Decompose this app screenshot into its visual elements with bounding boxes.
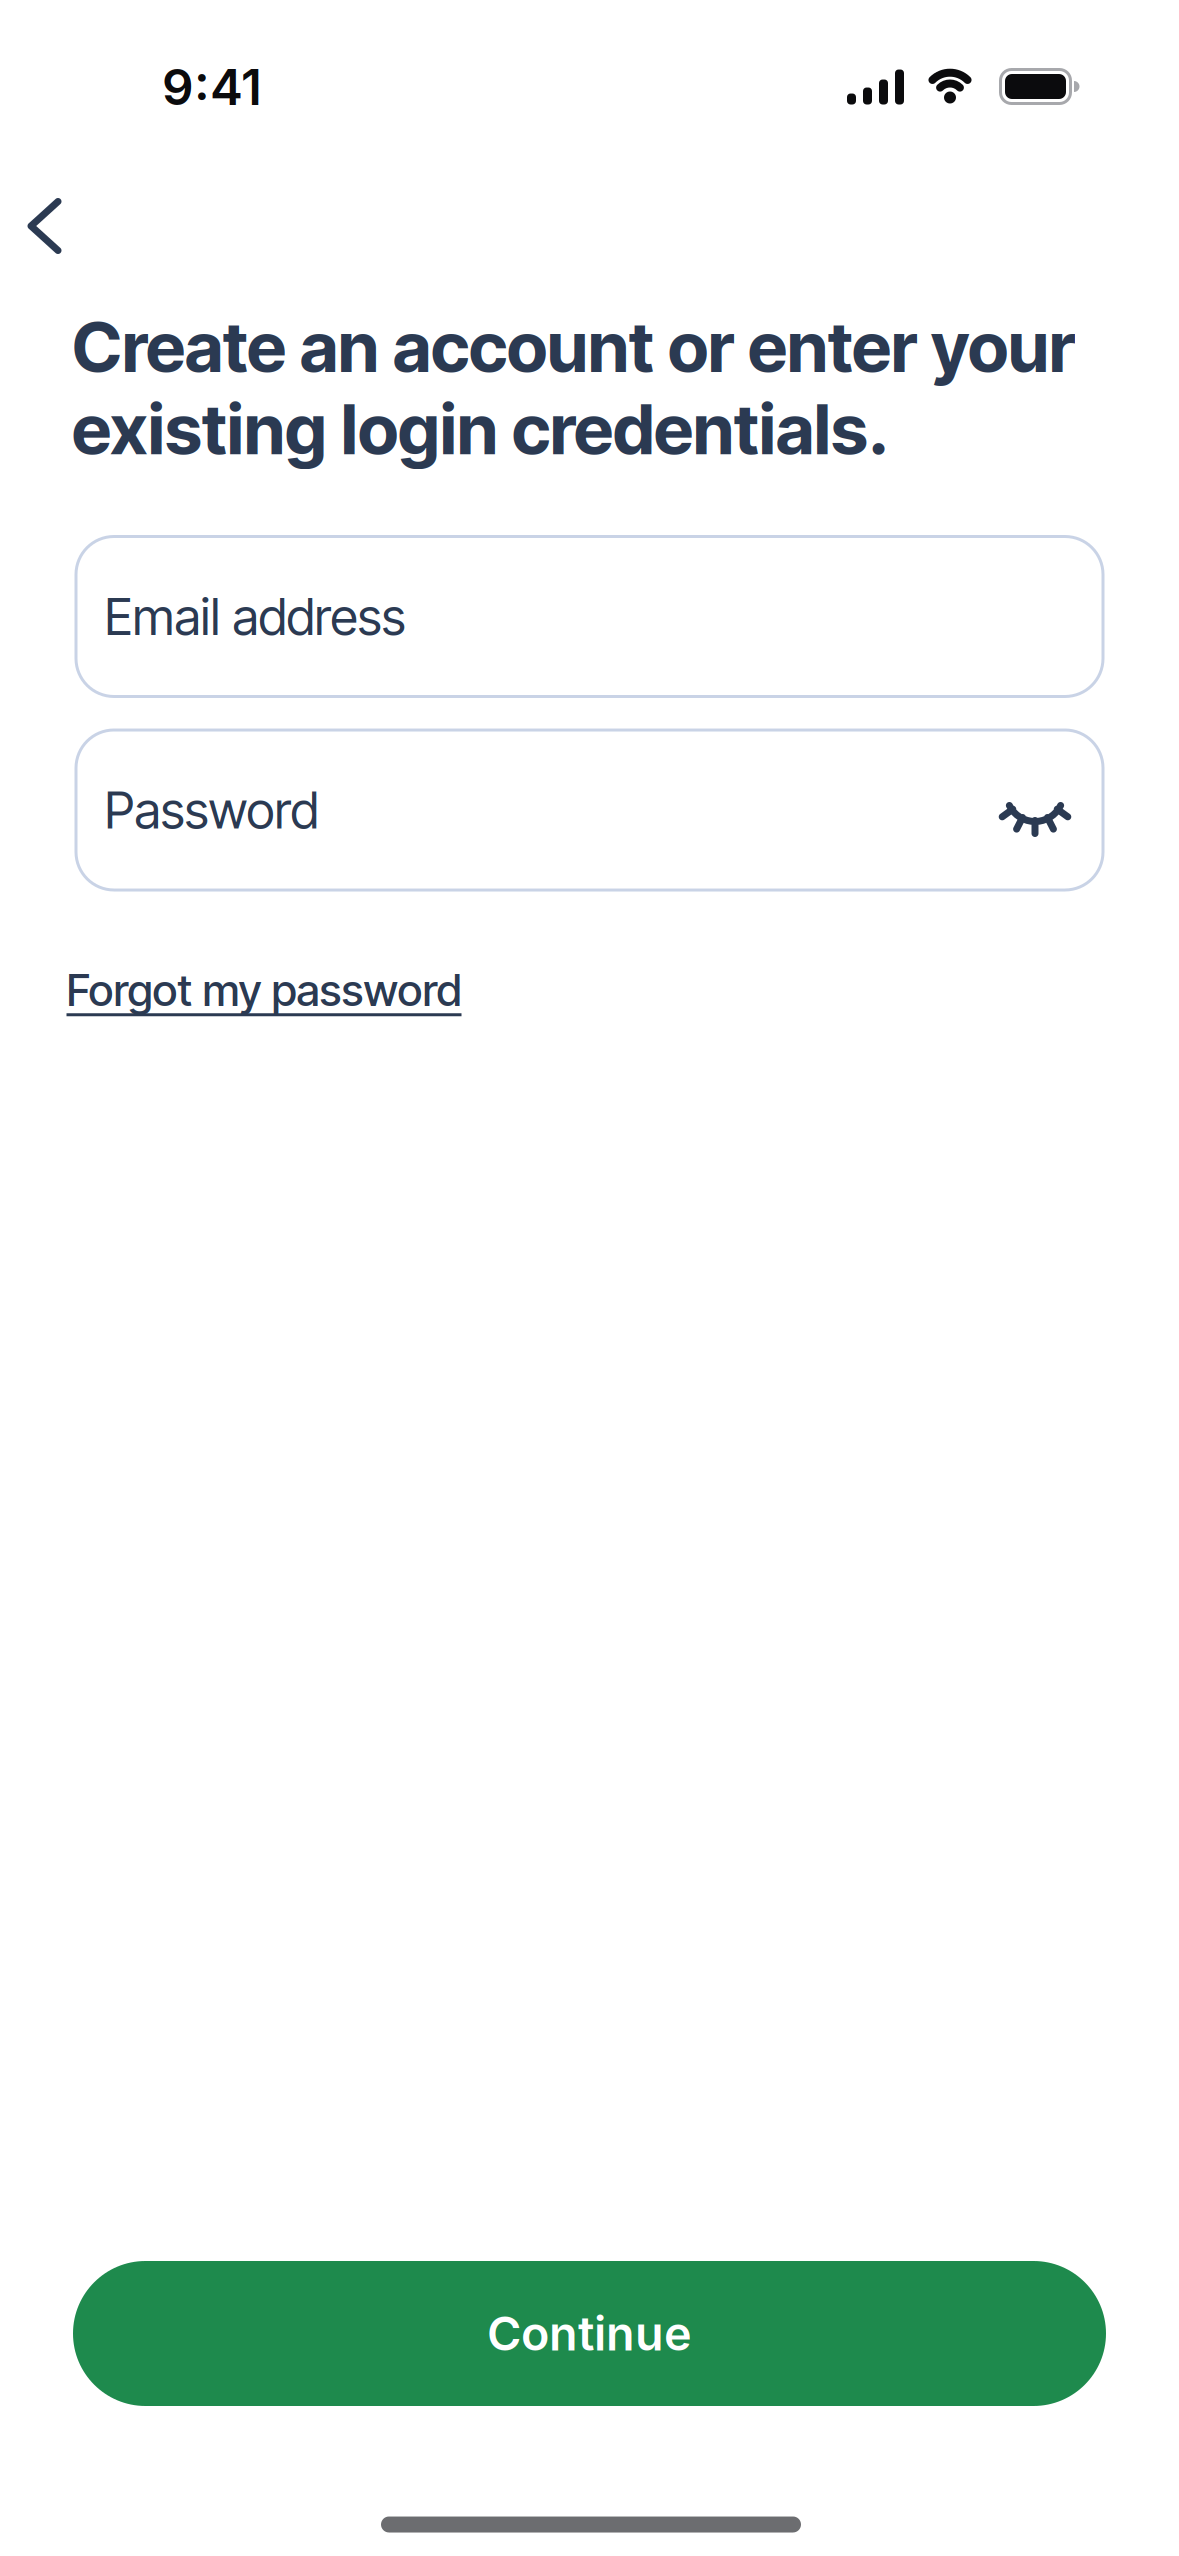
button[interactable]: Continue bbox=[73, 2261, 1106, 2406]
button[interactable]: Password bbox=[74, 728, 1104, 891]
button[interactable]: Show password bbox=[997, 792, 1073, 848]
button[interactable]: Email address bbox=[74, 535, 1104, 698]
staticText: Email address bbox=[104, 586, 405, 647]
staticText: Forgot my password bbox=[66, 963, 461, 1017]
staticText: Create an account or enter your existing… bbox=[72, 306, 1075, 470]
staticText: Continue bbox=[487, 2305, 692, 2362]
staticText: 9:41 bbox=[162, 57, 262, 117]
staticText: Password bbox=[104, 779, 318, 841]
button[interactable]: Back bbox=[27, 198, 61, 254]
button[interactable]: Forgot my password bbox=[66, 963, 461, 1017]
